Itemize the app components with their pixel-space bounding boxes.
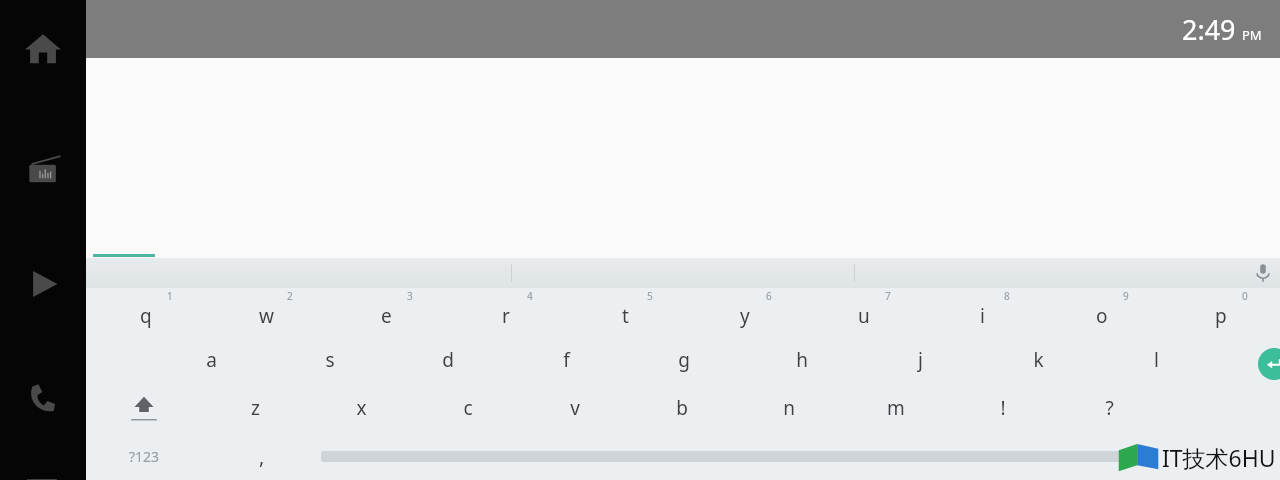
staticText: 6	[766, 289, 772, 303]
staticText: l	[1154, 347, 1159, 373]
button[interactable]: z	[202, 384, 308, 432]
button[interactable]: ?	[1056, 384, 1163, 432]
staticText: k	[1033, 347, 1044, 373]
staticText: 2	[287, 289, 293, 303]
button[interactable]: Phone	[17, 372, 69, 424]
button[interactable]: h	[743, 336, 861, 384]
button[interactable]: ?123	[86, 432, 203, 480]
staticText: u	[858, 303, 870, 329]
button[interactable]: c	[414, 384, 521, 432]
button[interactable]: v	[521, 384, 628, 432]
staticText: m	[887, 395, 905, 421]
button[interactable]: Space	[321, 443, 1135, 469]
button[interactable]: ,	[203, 432, 321, 480]
staticText: o	[1096, 303, 1108, 329]
button[interactable]: 6	[685, 288, 804, 336]
button[interactable]: f	[507, 336, 625, 384]
button[interactable]: Shift	[86, 384, 202, 432]
button[interactable]: 3	[326, 288, 446, 336]
staticText: p	[1215, 303, 1227, 329]
button[interactable]: l	[1097, 336, 1215, 384]
staticText: n	[783, 395, 795, 421]
staticText: ,	[259, 443, 265, 470]
staticText: e	[381, 303, 392, 329]
staticText: g	[678, 347, 690, 373]
staticText: f	[563, 347, 570, 373]
button[interactable]: s	[271, 336, 389, 384]
button[interactable]: Voice input	[1248, 258, 1278, 288]
button[interactable]: Play	[17, 258, 69, 310]
staticText: !	[1000, 395, 1006, 421]
staticText: d	[442, 347, 454, 373]
staticText: j	[918, 347, 923, 373]
staticText: s	[325, 347, 335, 373]
staticText: 3	[407, 289, 413, 303]
button[interactable]: n	[735, 384, 842, 432]
button[interactable]: x	[308, 384, 414, 432]
button[interactable]: 8	[923, 288, 1042, 336]
button[interactable]: 5	[566, 288, 685, 336]
button[interactable]: b	[628, 384, 735, 432]
staticText: 5	[647, 289, 653, 303]
staticText: r	[502, 303, 510, 329]
staticText: ?123	[129, 447, 160, 466]
button[interactable]: 1	[86, 288, 206, 336]
staticText: 2:49	[1182, 11, 1236, 48]
staticText: PM	[1242, 26, 1262, 44]
staticText: 8	[1004, 289, 1010, 303]
staticText: 9	[1123, 289, 1129, 303]
button[interactable]: a	[152, 336, 271, 384]
button[interactable]: 7	[804, 288, 923, 336]
button[interactable]: Enter	[1258, 348, 1280, 380]
staticText: z	[251, 395, 260, 421]
button[interactable]: 9	[1042, 288, 1161, 336]
button[interactable]: Radio	[17, 144, 69, 196]
staticText: i	[980, 303, 985, 329]
staticText: 4	[527, 289, 533, 303]
staticText: h	[796, 347, 808, 373]
staticText: ?	[1105, 395, 1114, 421]
staticText: b	[676, 395, 688, 421]
staticText: a	[206, 347, 217, 373]
button[interactable]: k	[979, 336, 1097, 384]
button[interactable]: Home	[17, 22, 69, 74]
button[interactable]: 2	[206, 288, 326, 336]
staticText: y	[740, 303, 750, 329]
staticText: t	[622, 303, 629, 329]
button[interactable]: j	[861, 336, 979, 384]
button[interactable]: d	[389, 336, 507, 384]
button[interactable]: 4	[446, 288, 566, 336]
staticText: w	[259, 303, 274, 329]
button[interactable]: m	[842, 384, 949, 432]
staticText: IT技术6HU	[1162, 442, 1276, 473]
button[interactable]: g	[625, 336, 743, 384]
staticText: q	[140, 303, 152, 329]
button[interactable]: !	[949, 384, 1056, 432]
staticText: c	[463, 395, 473, 421]
staticText: 1	[167, 289, 173, 303]
staticText: x	[356, 395, 367, 421]
button[interactable]: 0	[1161, 288, 1280, 336]
staticText: 7	[885, 289, 891, 303]
staticText: 0	[1242, 289, 1248, 303]
staticText: v	[570, 395, 580, 421]
